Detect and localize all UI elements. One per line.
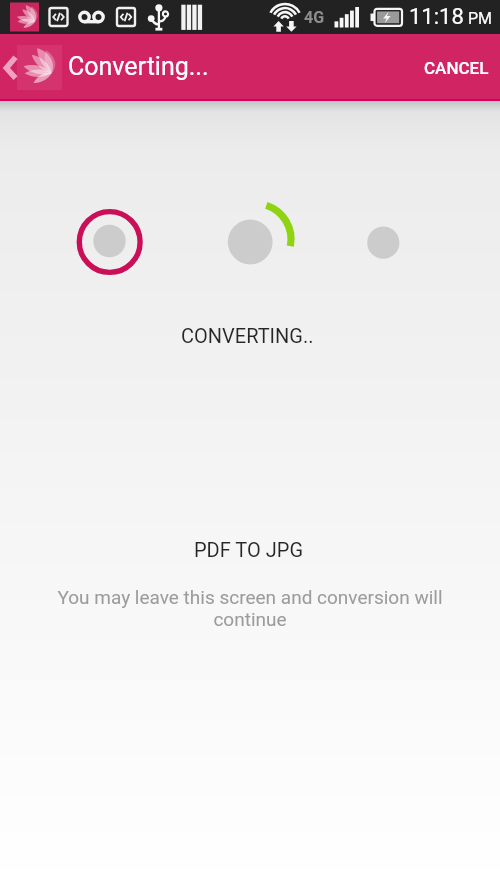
button[interactable]: CANCEL bbox=[408, 36, 500, 100]
staticText: 4G bbox=[304, 8, 325, 27]
button[interactable]: Back bbox=[0, 34, 66, 101]
staticText: You may leave this screen and conversion… bbox=[44, 586, 456, 631]
staticText: CONVERTING.. bbox=[181, 324, 314, 347]
staticText: CANCEL bbox=[424, 58, 489, 78]
staticText: PDF TO JPG bbox=[194, 538, 304, 561]
staticText: PM bbox=[468, 9, 493, 28]
staticText: Converting... bbox=[68, 52, 209, 81]
staticText: 11:18 bbox=[409, 4, 464, 30]
